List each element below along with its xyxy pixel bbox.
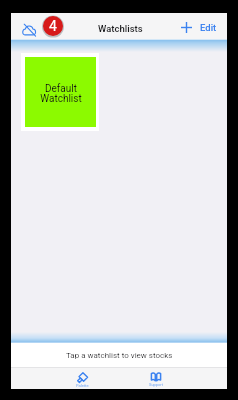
button[interactable]: Edit [197, 17, 220, 37]
staticText: Default Watchlist [40, 83, 82, 105]
button[interactable]: 4 notifications [42, 15, 64, 37]
button[interactable]: Palette [56, 368, 108, 389]
button[interactable]: Add watchlist [177, 18, 195, 36]
button[interactable]: Offline [19, 19, 39, 39]
staticText: Tap a watchlist to view stocks [66, 351, 173, 360]
staticText: Palette [76, 383, 89, 388]
staticText: Edit [200, 22, 217, 33]
button[interactable]: Support [130, 368, 182, 389]
staticText: 4 [49, 18, 57, 34]
button[interactable]: Default Watchlist [21, 53, 99, 131]
staticText: Watchlists [98, 23, 143, 34]
staticText: Support [149, 382, 164, 387]
